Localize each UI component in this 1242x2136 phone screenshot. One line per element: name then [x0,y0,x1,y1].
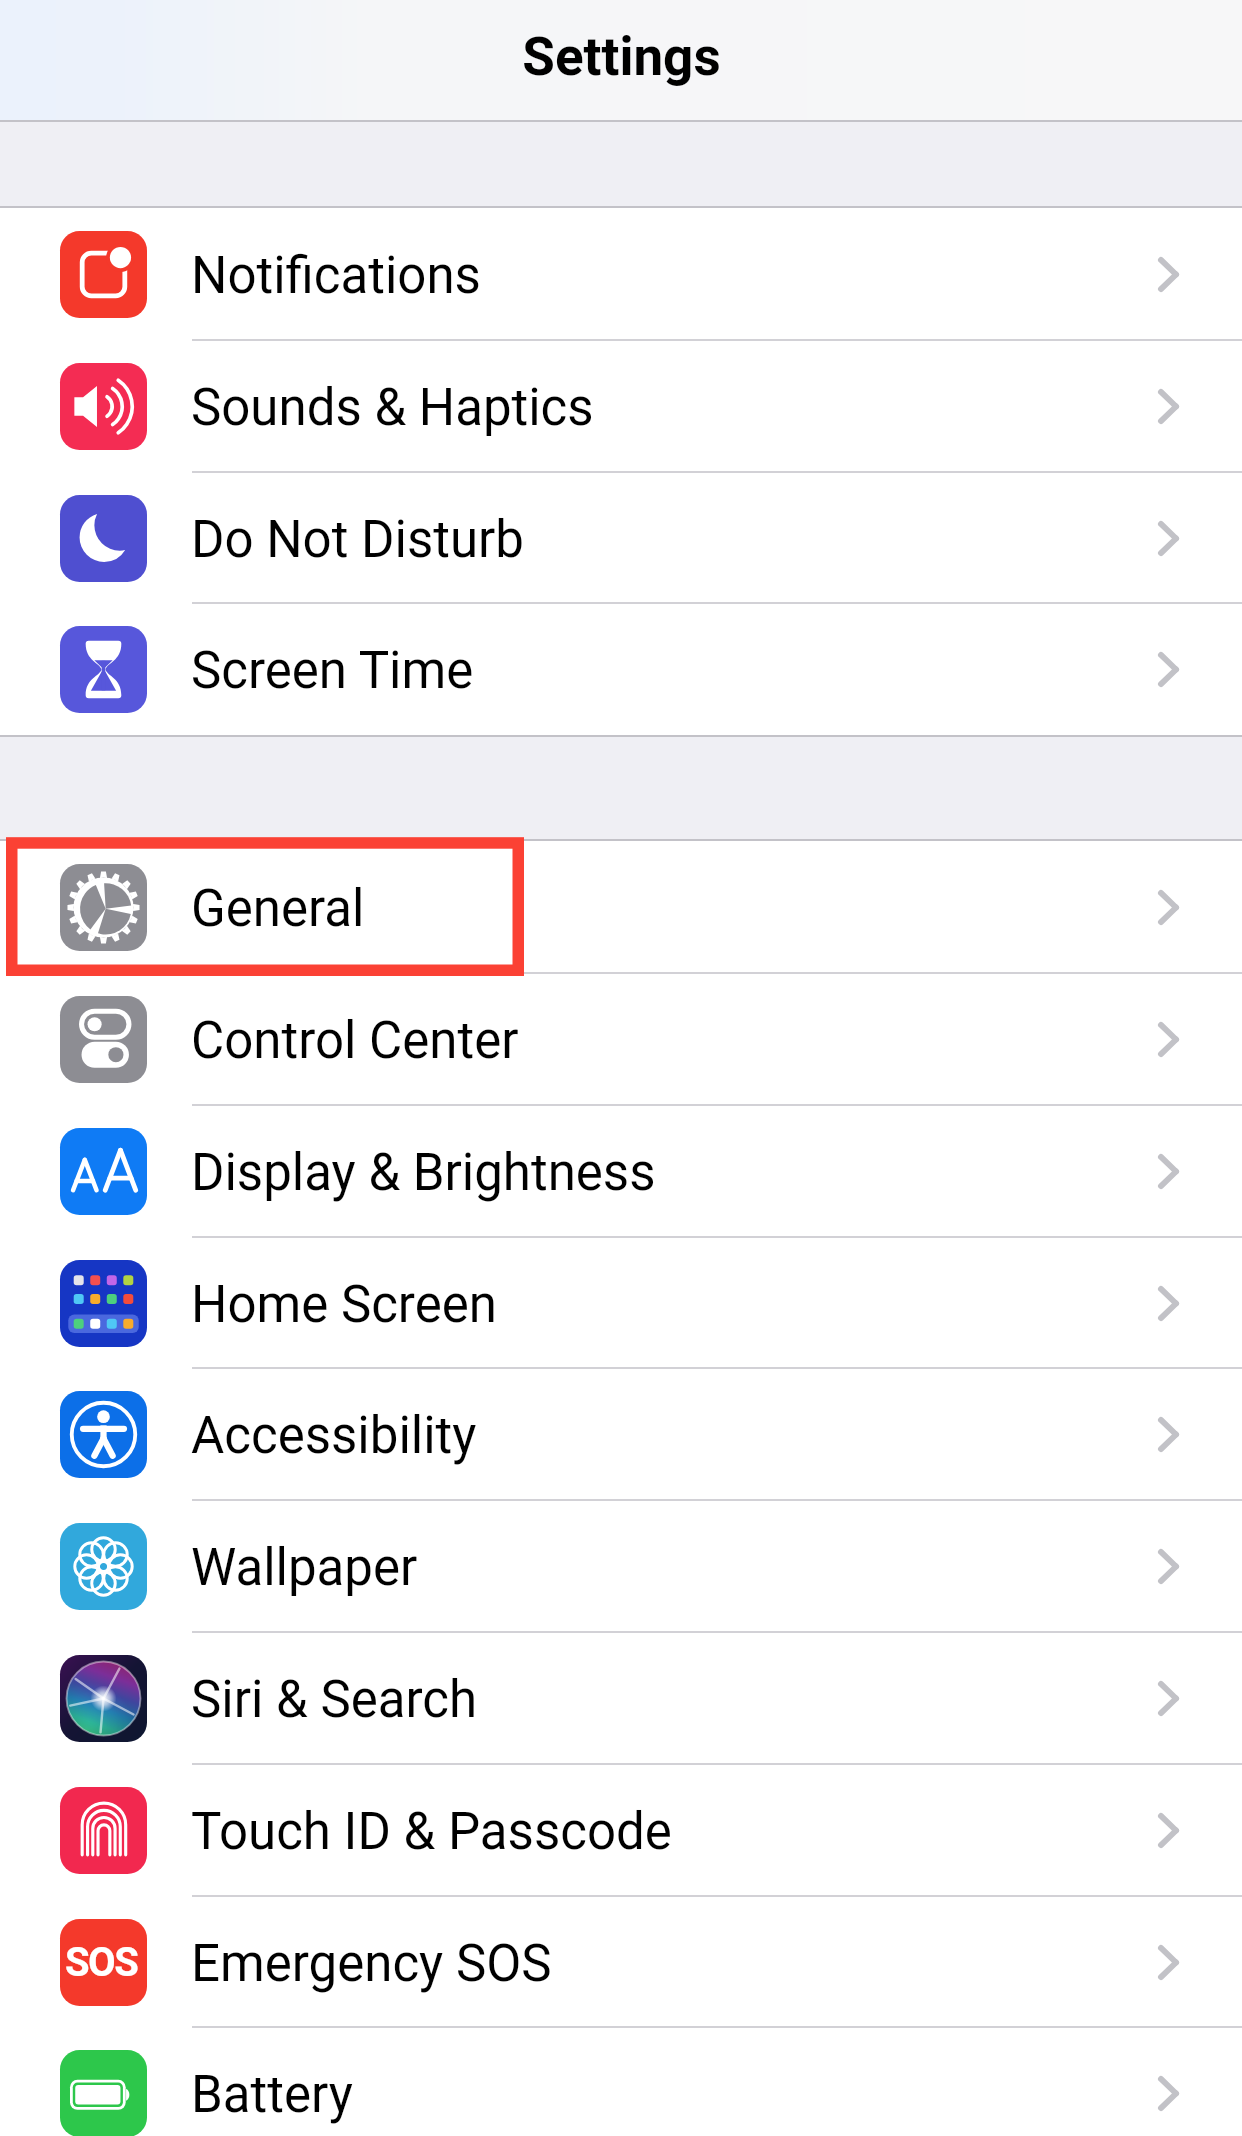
staticText: Notifications [191,246,481,306]
staticText: General [191,879,365,939]
staticText: Sounds & Haptics [191,378,594,438]
other: Open Touch ID & Passcode [1158,1813,1179,1848]
button[interactable]: Touch ID & Passcode [0,1764,1242,1896]
other: Open Screen Time [1158,652,1179,687]
staticText: Accessibility [191,1406,477,1466]
button[interactable]: SOS [0,1896,1242,2028]
button[interactable]: Accessibility [0,1368,1242,1500]
staticText: SOS [65,1939,138,1986]
staticText: Battery [191,2065,353,2125]
staticText: Wallpaper [191,1538,418,1598]
staticText: Settings [522,26,721,88]
other: Open General [1158,890,1179,925]
button[interactable]: Display & Brightness [0,1105,1242,1237]
staticText: Control Center [191,1011,519,1071]
other: Open Emergency SOS [1158,1945,1179,1980]
other: Open Accessibility [1158,1417,1179,1452]
other: Open Display & Brightness [1158,1154,1179,1189]
button[interactable]: Sounds & Haptics [0,340,1242,472]
other: Open Do Not Disturb [1158,521,1179,556]
button[interactable]: Battery [0,2027,1242,2136]
staticText: Display & Brightness [191,1143,656,1203]
button[interactable]: Notifications [0,208,1242,340]
button[interactable]: General [0,841,1242,973]
staticText: Home Screen [191,1275,497,1335]
staticText: Emergency SOS [191,1934,552,1994]
other: Open Battery [1158,2076,1179,2111]
staticText: Touch ID & Passcode [191,1802,672,1862]
staticText: Siri & Search [191,1670,478,1730]
button[interactable]: Control Center [0,973,1242,1105]
button[interactable]: Wallpaper [0,1500,1242,1632]
other: Open Home Screen [1158,1286,1179,1321]
other: Open Sounds & Haptics [1158,389,1179,424]
button[interactable]: Siri & Search [0,1632,1242,1764]
staticText: Do Not Disturb [191,510,524,570]
other: Open Control Center [1158,1022,1179,1057]
button[interactable]: Home Screen [0,1237,1242,1369]
other: Open Wallpaper [1158,1549,1179,1584]
button[interactable]: Screen Time [0,603,1242,735]
staticText: Screen Time [191,641,474,701]
other: Open Siri & Search [1158,1681,1179,1716]
other: Open Notifications [1158,257,1179,292]
button[interactable]: Do Not Disturb [0,472,1242,604]
